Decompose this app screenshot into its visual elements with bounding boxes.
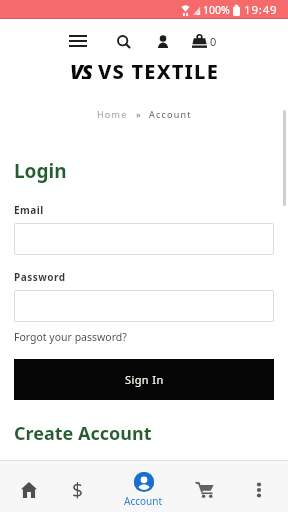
button[interactable] bbox=[14, 223, 274, 255]
staticText: 100% bbox=[203, 3, 230, 17]
button[interactable] bbox=[152, 34, 174, 48]
staticText: Login bbox=[14, 158, 67, 184]
button[interactable]: Home bbox=[97, 108, 128, 120]
button[interactable] bbox=[65, 34, 91, 48]
staticText: $ bbox=[72, 477, 83, 503]
button[interactable]: Account bbox=[114, 461, 172, 512]
staticText: VS bbox=[70, 58, 92, 79]
staticText: Sign In bbox=[125, 372, 164, 387]
staticText: Account bbox=[149, 108, 192, 120]
button[interactable] bbox=[230, 461, 288, 512]
staticText: VS TEXTILE bbox=[98, 58, 219, 79]
button[interactable] bbox=[14, 290, 274, 322]
button[interactable] bbox=[112, 34, 134, 48]
staticText: Email bbox=[14, 203, 44, 217]
staticText: Password bbox=[14, 270, 66, 284]
button[interactable]: Forgot your password? bbox=[14, 330, 127, 344]
staticText: Account bbox=[124, 494, 163, 508]
button[interactable] bbox=[0, 461, 57, 512]
staticText: » bbox=[136, 108, 141, 120]
button[interactable] bbox=[172, 461, 230, 512]
button[interactable]: 0 bbox=[192, 34, 217, 48]
staticText: 19:49 bbox=[244, 2, 278, 18]
staticText: 0 bbox=[210, 34, 217, 48]
button[interactable]: $ bbox=[57, 461, 114, 512]
button[interactable]: Sign In bbox=[14, 359, 274, 400]
staticText: Create Account bbox=[14, 421, 152, 446]
